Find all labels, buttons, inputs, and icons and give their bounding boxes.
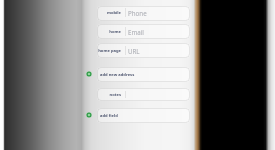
button[interactable] <box>97 6 190 21</box>
staticText: add new address <box>100 72 135 78</box>
button[interactable]: add field <box>86 112 92 118</box>
button[interactable] <box>97 24 190 39</box>
staticText: notes <box>109 92 121 98</box>
staticText: home <box>109 29 121 35</box>
staticText: add field <box>100 113 118 119</box>
button[interactable] <box>97 43 190 58</box>
staticText: URL <box>128 47 140 55</box>
staticText: Email <box>128 28 144 36</box>
button[interactable] <box>97 88 190 101</box>
staticText: Phone <box>128 9 147 17</box>
staticText: mobile <box>106 10 121 16</box>
button[interactable]: add new address <box>86 71 92 77</box>
staticText: home page <box>98 48 121 54</box>
button[interactable] <box>97 108 190 123</box>
button[interactable] <box>97 67 190 82</box>
